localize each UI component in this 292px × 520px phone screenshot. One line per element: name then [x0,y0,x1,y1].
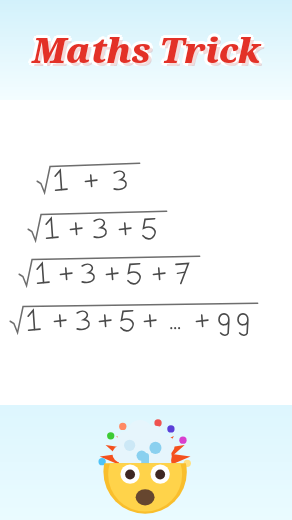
staticText: Maths Trick [34,24,262,72]
staticText: Maths Trick [35,29,263,77]
staticText: Maths Trick [29,26,257,74]
staticText: Maths Trick [32,29,260,77]
button[interactable]: Mind blown [0,405,292,520]
button[interactable]: Maths Trick [0,0,292,100]
staticText: Maths Trick [30,24,258,72]
staticText: Maths Trick [32,23,260,71]
staticText: Maths Trick [30,28,258,76]
staticText: Maths Trick [34,28,262,76]
staticText: Maths Trick [32,26,260,74]
staticText: Maths Trick [35,26,263,74]
